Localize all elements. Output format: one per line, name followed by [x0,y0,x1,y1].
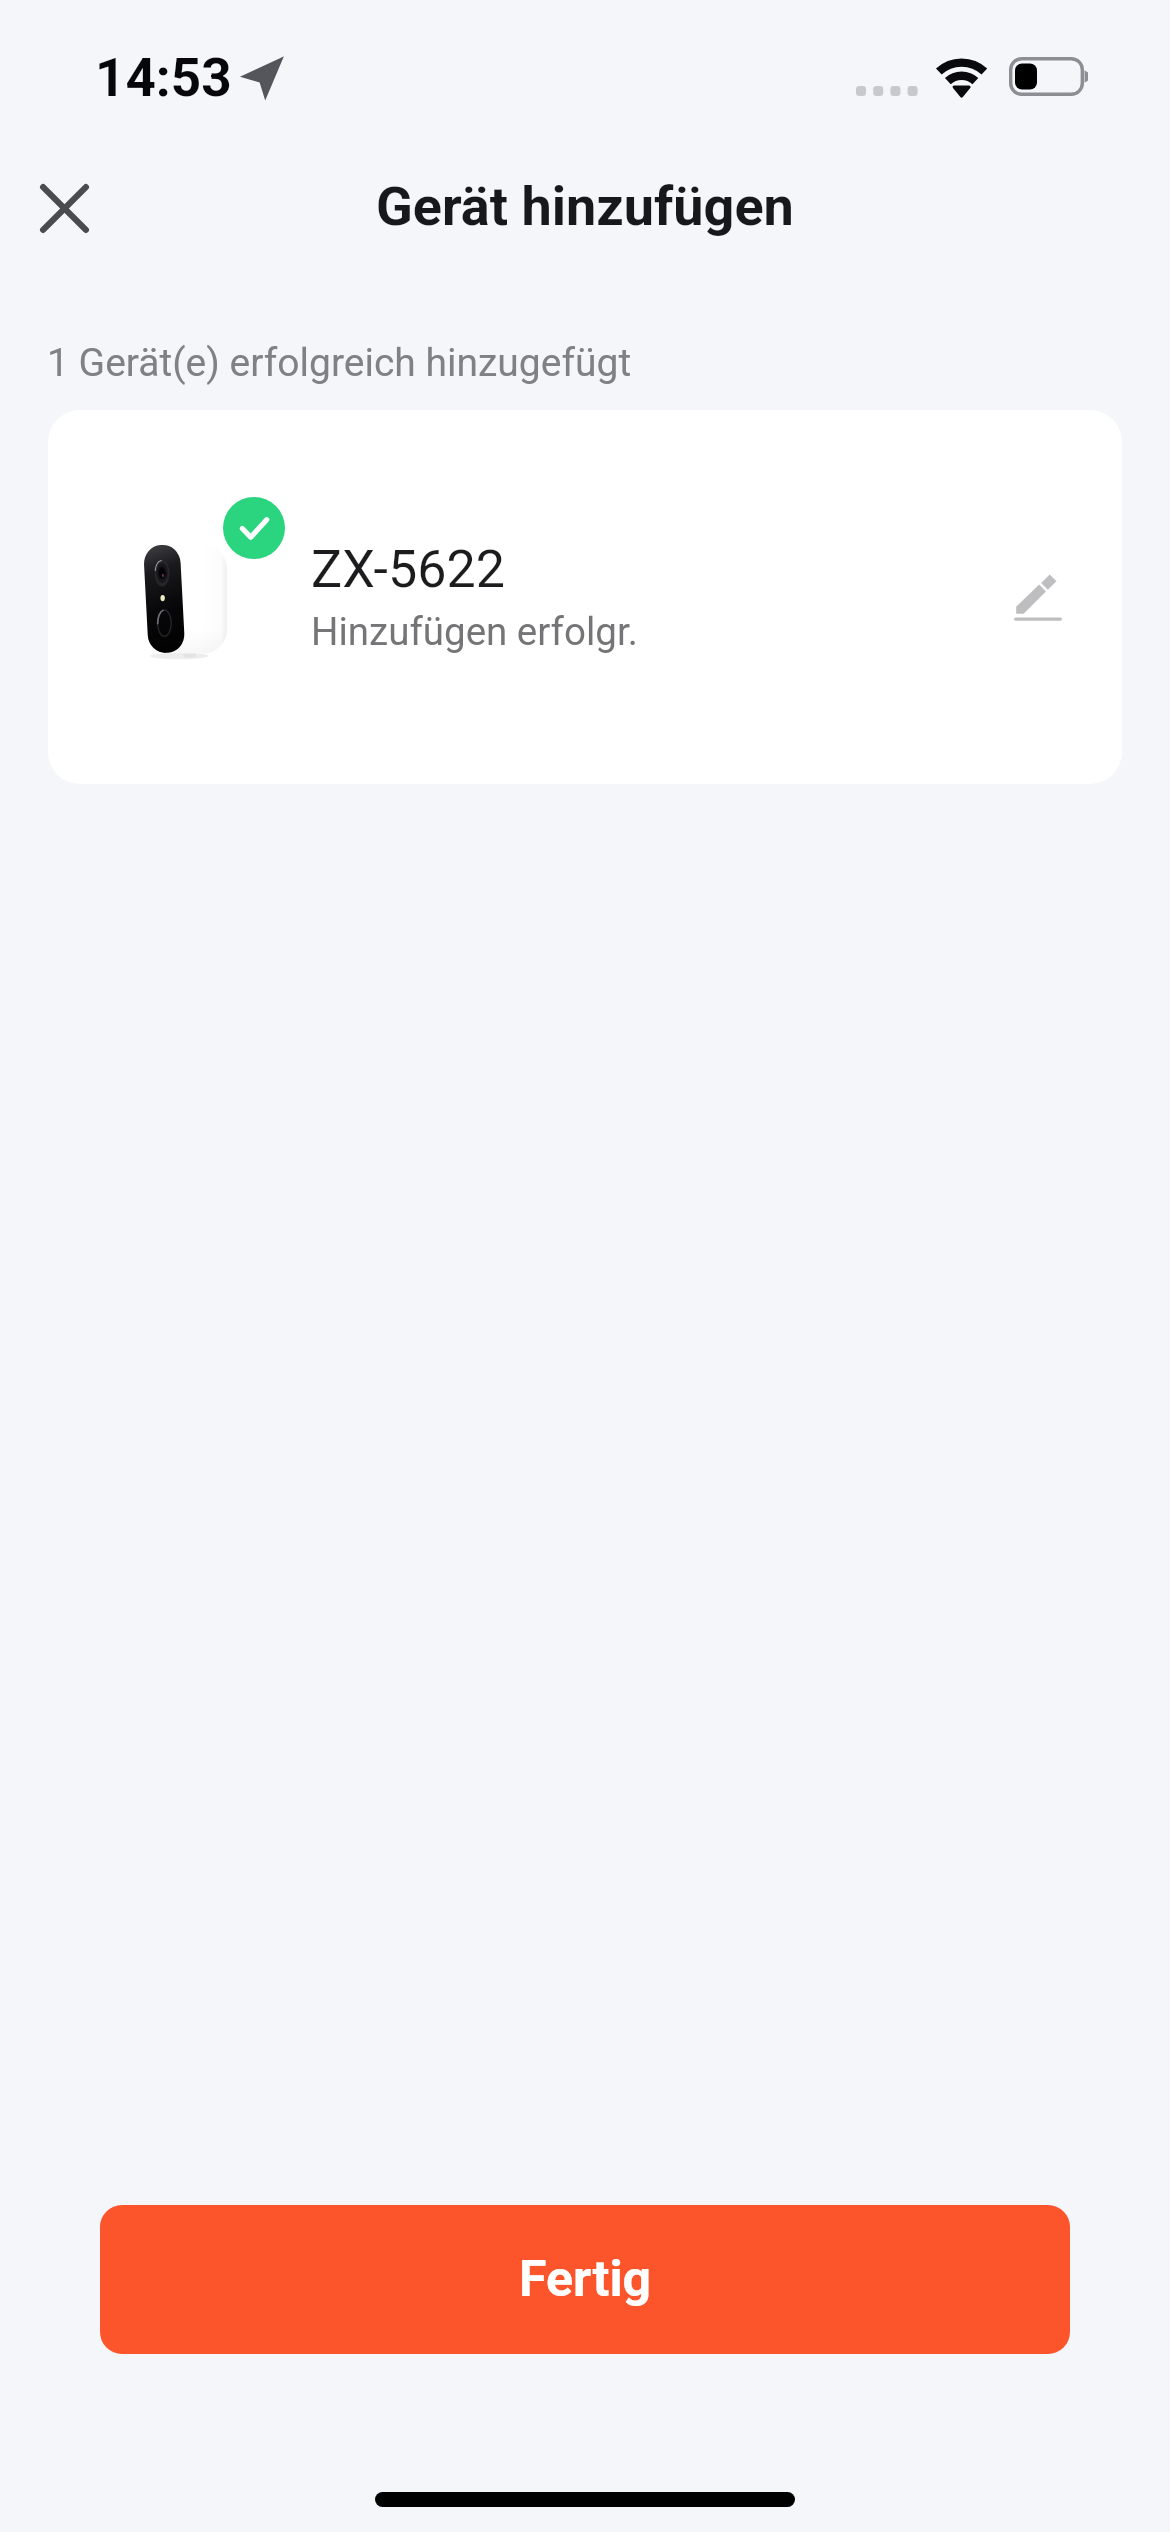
button[interactable]: Schließen [20,164,108,252]
button[interactable]: Umbenennen [990,549,1086,645]
staticText: 1 Gerät(e) erfolgreich hinzugefügt [47,340,632,386]
staticText: Gerät hinzufügen [376,175,794,238]
staticText: ZX-5622 [311,539,505,600]
staticText: Fertig [519,2250,652,2309]
staticText: Hinzufügen erfolgr. [311,609,638,654]
button[interactable]: Fertig [100,2205,1070,2354]
button[interactable]: ZX-5622 [48,410,1122,784]
staticText: 14:53 [95,47,232,109]
